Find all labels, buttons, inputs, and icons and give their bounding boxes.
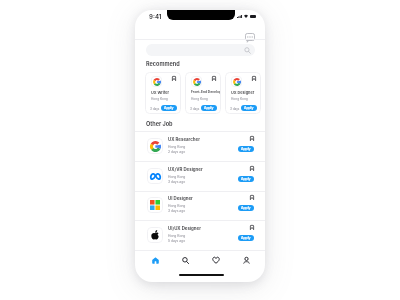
button[interactable]: Home: [140, 250, 170, 270]
staticText: UI Designer: [168, 196, 193, 201]
button[interactable]: Apply: [161, 105, 177, 111]
button[interactable]: Save job: [225, 72, 261, 114]
staticText: Apply: [204, 106, 214, 110]
button[interactable]: Apply: [238, 176, 254, 182]
staticText: Hong Kong: [231, 97, 248, 101]
staticText: Apply: [244, 106, 254, 110]
button[interactable]: Save job: [248, 193, 256, 201]
button[interactable]: Save job: [210, 74, 218, 82]
staticText: Front-End Developer: [191, 90, 221, 94]
staticText: 3 days: [150, 107, 160, 111]
staticText: 3 days: [190, 107, 200, 111]
staticText: 9:41: [149, 13, 162, 20]
button[interactable]: Apply: [241, 105, 257, 111]
button[interactable]: Save job: [248, 134, 256, 142]
staticText: 3 days: [230, 107, 240, 111]
button[interactable]: Save job: [248, 164, 256, 172]
button[interactable]: Save job: [248, 223, 256, 231]
staticText: Apply: [241, 206, 251, 210]
button[interactable]: Save job: [170, 74, 178, 82]
staticText: Apply: [241, 177, 251, 181]
button[interactable]: UI Designer: [135, 191, 265, 220]
button[interactable]: Save job: [185, 72, 221, 114]
staticText: UX Designer: [231, 90, 255, 95]
staticText: 3 days ago: [168, 209, 186, 213]
staticText: Apply: [241, 236, 251, 240]
button[interactable]: UI/UX Designer: [135, 221, 265, 250]
staticText: Hong Kong: [168, 234, 186, 238]
staticText: UX Writer: [151, 90, 170, 95]
button[interactable]: Favourites: [200, 250, 231, 270]
staticText: Hong Kong: [168, 175, 186, 179]
button[interactable]: [146, 44, 255, 56]
staticText: 5 days ago: [168, 239, 186, 243]
staticText: Hong Kong: [191, 97, 208, 101]
button[interactable]: UX Researcher: [135, 132, 265, 161]
button[interactable]: Save job: [145, 72, 181, 114]
staticText: Recommend: [146, 61, 180, 68]
staticText: Hong Kong: [168, 145, 186, 149]
button[interactable]: Apply: [238, 205, 254, 211]
staticText: UI/UX Designer: [168, 226, 201, 231]
button[interactable]: Profile: [231, 250, 262, 270]
button[interactable]: Save job: [250, 74, 258, 82]
staticText: UX Researcher: [168, 137, 201, 142]
button[interactable]: Apply: [238, 235, 254, 241]
staticText: Other Job: [146, 121, 173, 128]
button[interactable]: Messages: [243, 31, 256, 44]
staticText: Apply: [241, 147, 251, 151]
staticText: Apply: [164, 106, 174, 110]
staticText: UX/VR Designer: [168, 167, 203, 172]
staticText: 3 days ago: [168, 180, 186, 184]
button[interactable]: Apply: [238, 146, 254, 152]
staticText: Hong Kong: [168, 204, 186, 208]
staticText: 2 days ago: [168, 150, 186, 154]
button[interactable]: Apply: [201, 105, 217, 111]
button[interactable]: Search: [170, 250, 200, 270]
button[interactable]: UX/VR Designer: [135, 162, 265, 191]
staticText: Hong Kong: [151, 97, 168, 101]
